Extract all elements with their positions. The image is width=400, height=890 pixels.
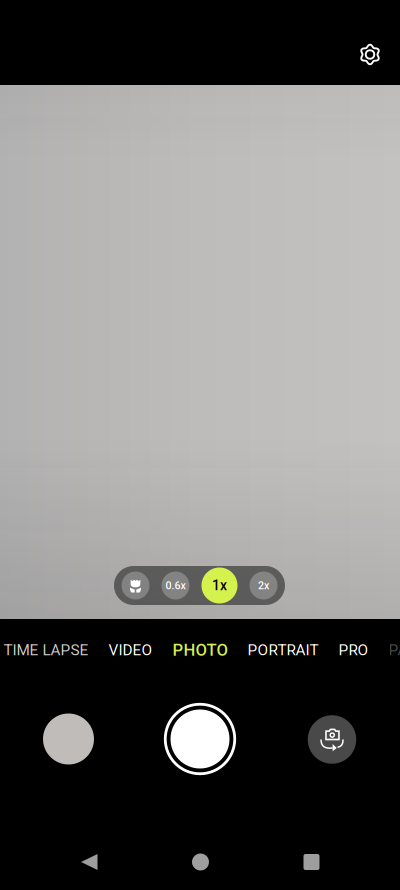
button[interactable]: Back (66, 839, 111, 884)
button[interactable]: Take photo (164, 703, 236, 775)
button[interactable]: PORTRAIT (247, 641, 318, 659)
button[interactable]: PRO (338, 641, 368, 659)
staticText: PHOTO (172, 640, 227, 660)
button[interactable]: TIME LAPSE (3, 641, 88, 659)
button[interactable]: 1x (201, 567, 237, 603)
button[interactable]: PHOTO (172, 640, 227, 660)
staticText: 2x (258, 579, 269, 592)
staticText: PORTRAIT (247, 641, 318, 659)
button[interactable]: 2x (249, 571, 277, 599)
staticText: TIME LAPSE (3, 641, 88, 659)
button[interactable]: Settings (348, 33, 391, 76)
staticText: PANORAMA (388, 641, 400, 659)
staticText: VIDEO (108, 641, 152, 659)
button[interactable]: Home (178, 839, 223, 884)
button[interactable]: Recent apps (289, 840, 333, 884)
button[interactable]: 0.6x (161, 571, 189, 599)
staticText: 1x (212, 577, 227, 594)
button[interactable]: Switch camera (308, 715, 356, 764)
staticText: PRO (338, 641, 368, 659)
button[interactable]: VIDEO (108, 641, 152, 659)
staticText: 0.6x (165, 579, 185, 592)
button[interactable]: PANORAMA (388, 641, 400, 659)
button[interactable]: Macro (121, 571, 149, 599)
button[interactable]: Gallery (43, 713, 94, 764)
